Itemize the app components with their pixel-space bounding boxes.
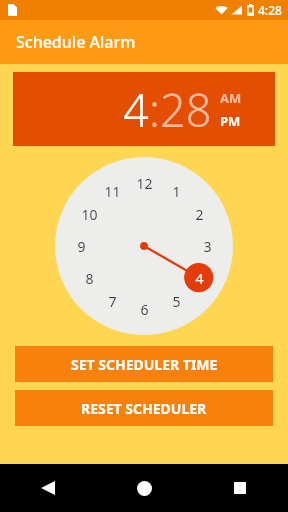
- staticText: 9: [77, 237, 86, 256]
- button[interactable]: Home: [96, 464, 192, 512]
- button[interactable]: RESET SCHEDULER: [15, 390, 273, 426]
- staticText: 5: [172, 292, 181, 311]
- staticText: 3: [203, 237, 212, 256]
- button[interactable]: PM: [220, 112, 241, 130]
- button[interactable]: AM: [220, 89, 242, 107]
- staticText: 11: [104, 182, 121, 201]
- staticText: SET SCHEDULER TIME: [71, 355, 218, 374]
- staticText: :28: [149, 79, 212, 140]
- staticText: 10: [81, 205, 98, 224]
- button[interactable]: 4: [13, 72, 275, 146]
- staticText: 6: [140, 300, 149, 319]
- staticText: 4:28: [258, 2, 282, 18]
- staticText: 8: [85, 269, 94, 288]
- staticText: 1: [172, 182, 181, 201]
- staticText: RESET SCHEDULER: [81, 399, 207, 418]
- staticText: 2: [195, 205, 204, 224]
- staticText: 12: [136, 174, 153, 193]
- staticText: 4: [123, 79, 149, 140]
- button[interactable]: Recent apps: [192, 464, 288, 512]
- button[interactable]: Back: [0, 464, 96, 512]
- staticText: Schedule Alarm: [16, 31, 136, 53]
- button[interactable]: Clock dial, hour 4 selected: [55, 157, 233, 335]
- staticText: 7: [108, 292, 117, 311]
- staticText: 4: [195, 269, 204, 288]
- button[interactable]: SET SCHEDULER TIME: [15, 346, 273, 382]
